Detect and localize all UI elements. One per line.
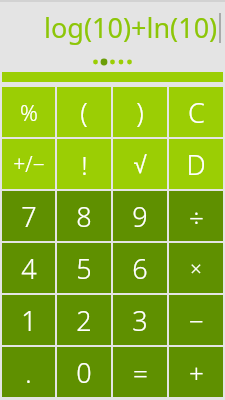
staticText: 7 — [21, 198, 37, 235]
button[interactable]: 9 — [113, 191, 167, 241]
button[interactable]: ( — [57, 87, 111, 137]
staticText: − — [189, 303, 204, 338]
staticText: 6 — [132, 250, 148, 287]
staticText: 9 — [132, 198, 148, 235]
button[interactable]: 5 — [57, 243, 111, 293]
button[interactable]: log(10)+ln(10) — [0, 2, 225, 52]
button[interactable]: 6 — [113, 243, 167, 293]
button[interactable]: 7 — [2, 191, 55, 241]
button[interactable]: + — [169, 347, 223, 397]
staticText: × — [190, 255, 202, 282]
button[interactable]: − — [169, 295, 223, 345]
button[interactable]: D — [169, 139, 223, 189]
staticText: 0 — [76, 354, 92, 391]
staticText: log(10)+ln(10) — [44, 9, 218, 46]
staticText: 4 — [21, 250, 37, 287]
button[interactable]: 3 — [113, 295, 167, 345]
button[interactable]: C — [169, 87, 223, 137]
button[interactable]: . — [2, 347, 55, 397]
button[interactable]: +/− — [2, 139, 55, 189]
staticText: % — [20, 97, 38, 127]
staticText: 1 — [21, 302, 37, 339]
staticText: ÷ — [189, 199, 204, 234]
staticText: 8 — [76, 198, 92, 235]
button[interactable]: ÷ — [169, 191, 223, 241]
staticText: ) — [136, 94, 144, 131]
staticText: 2 — [76, 302, 92, 339]
staticText: 5 — [76, 250, 92, 287]
staticText: ! — [81, 147, 88, 182]
button[interactable]: ) — [113, 87, 167, 137]
staticText: + — [189, 355, 204, 390]
staticText: 3 — [132, 302, 148, 339]
button[interactable]: 0 — [57, 347, 111, 397]
staticText: . — [25, 355, 32, 390]
button[interactable]: √ — [113, 139, 167, 189]
staticText: C — [188, 94, 205, 131]
button[interactable]: 1 — [2, 295, 55, 345]
button[interactable]: % — [2, 87, 55, 137]
button[interactable]: 8 — [57, 191, 111, 241]
staticText: +/− — [13, 150, 45, 179]
button[interactable]: ! — [57, 139, 111, 189]
button[interactable]: 2 — [57, 295, 111, 345]
button[interactable]: × — [169, 243, 223, 293]
staticText: √ — [133, 151, 147, 178]
button[interactable]: 4 — [2, 243, 55, 293]
staticText: ( — [80, 94, 88, 131]
staticText: = — [133, 355, 148, 390]
button[interactable]: = — [113, 347, 167, 397]
staticText: D — [186, 146, 206, 183]
